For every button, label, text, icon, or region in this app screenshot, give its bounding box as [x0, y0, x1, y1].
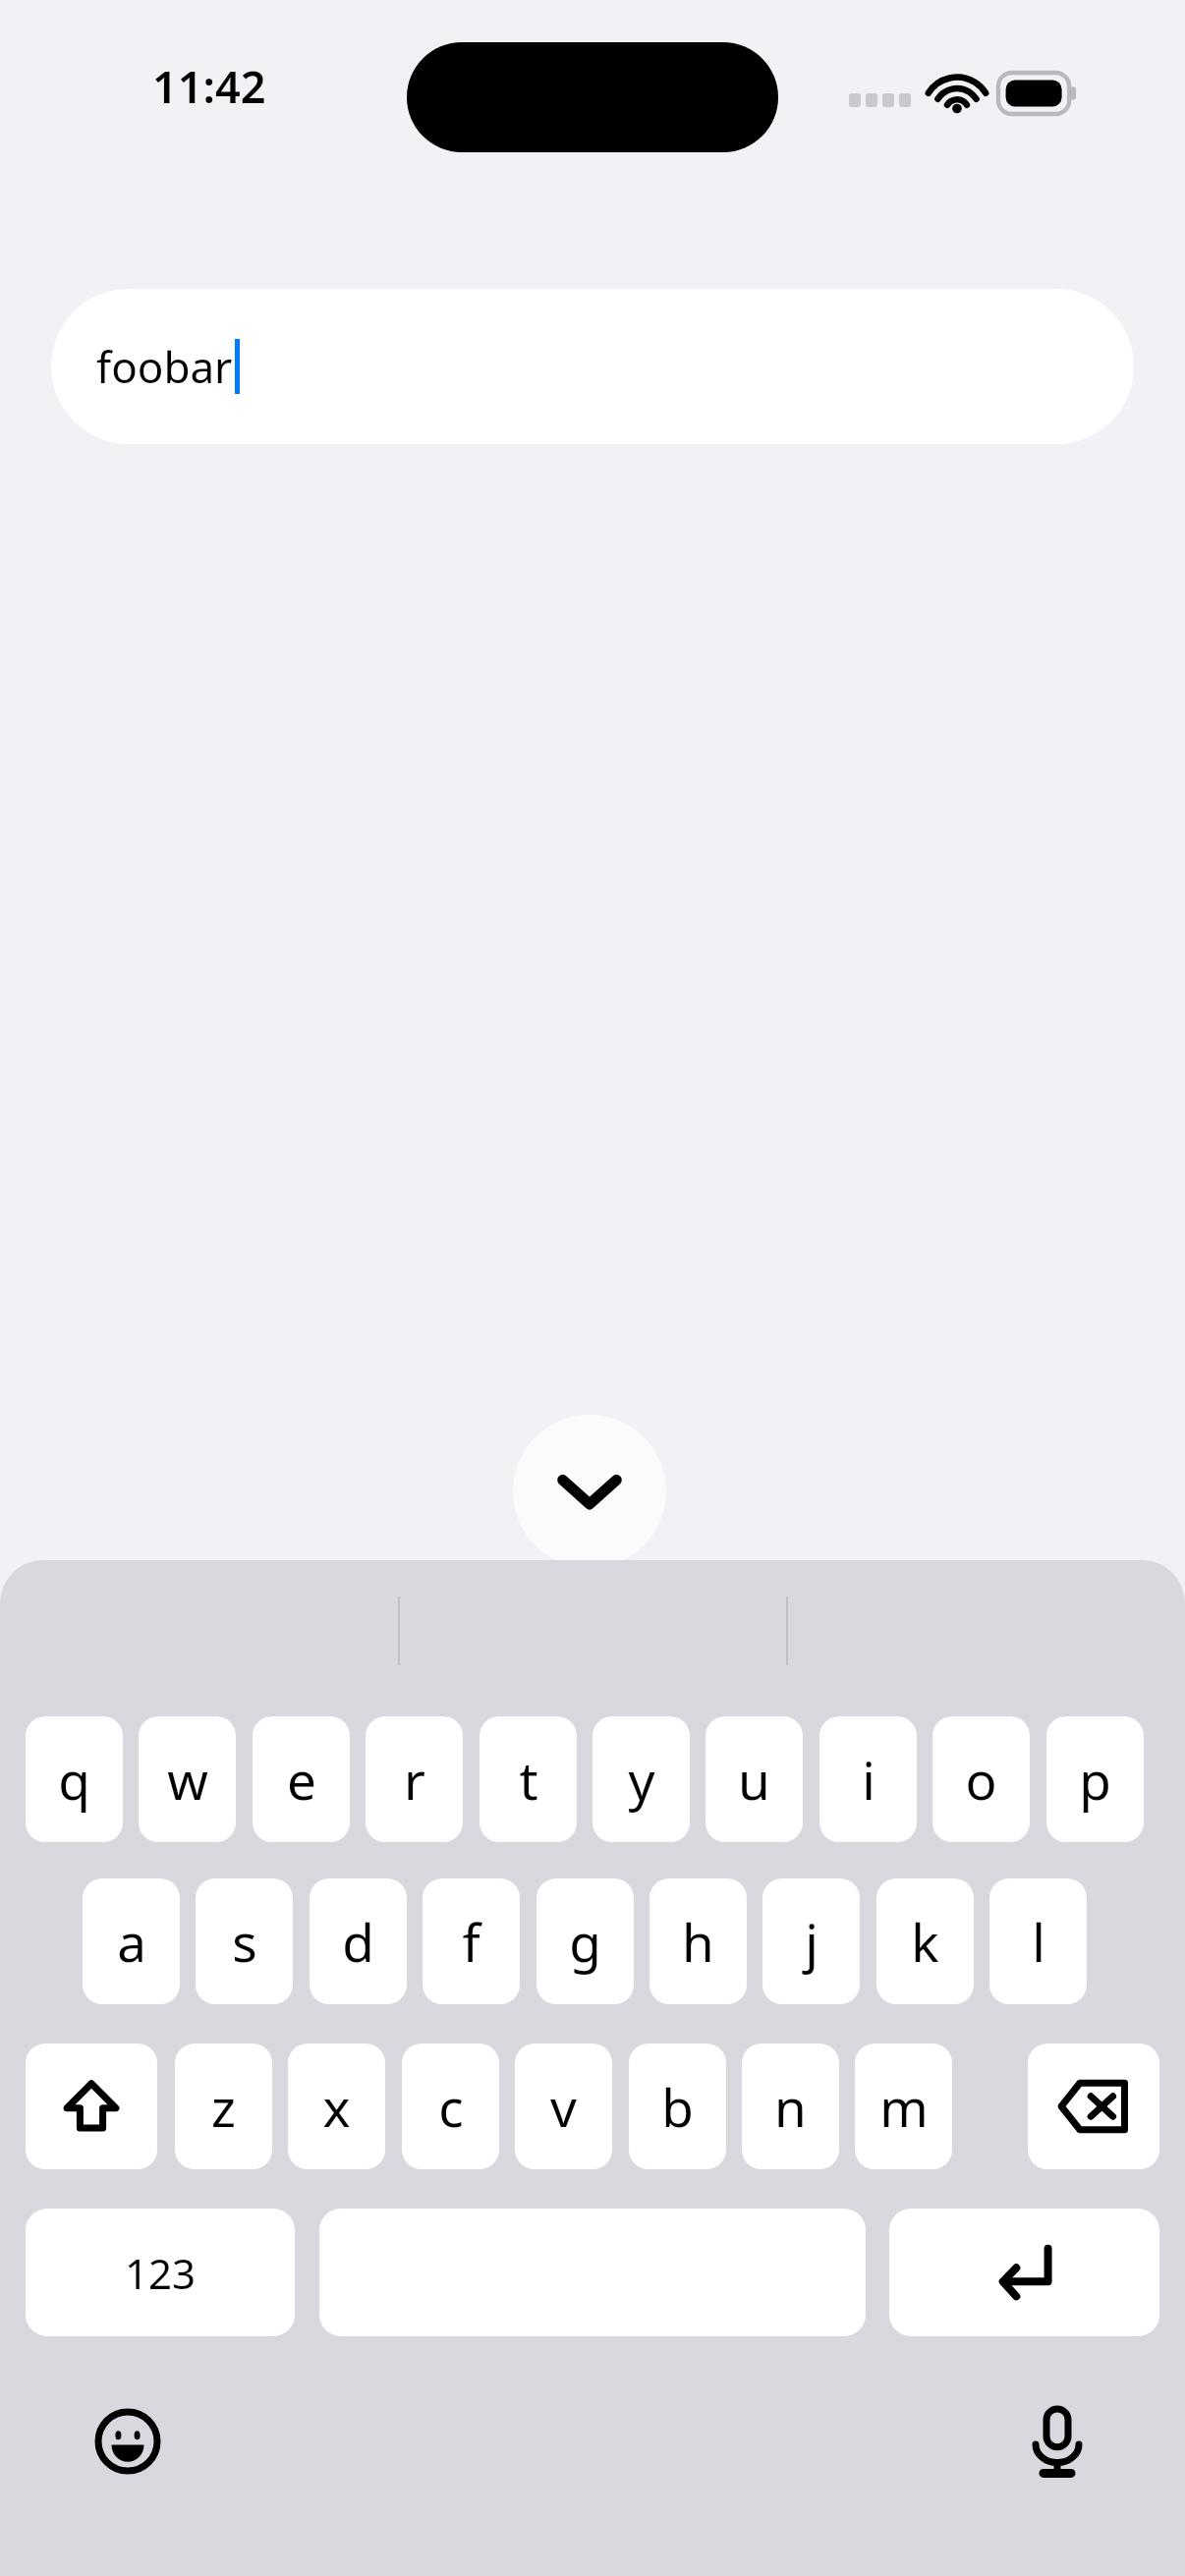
- button[interactable]: d: [310, 1878, 407, 2004]
- staticText: i: [862, 1744, 875, 1815]
- staticText: 123: [125, 2245, 197, 2301]
- staticText: w: [167, 1744, 208, 1815]
- button[interactable]: a: [83, 1878, 180, 2004]
- staticText: d: [342, 1906, 374, 1977]
- button[interactable]: j: [762, 1878, 860, 2004]
- staticText: g: [569, 1906, 601, 1977]
- staticText: l: [1032, 1906, 1045, 1977]
- staticText: t: [519, 1744, 538, 1815]
- button[interactable]: v: [515, 2044, 612, 2169]
- button[interactable]: p: [1046, 1716, 1144, 1842]
- staticText: 11:42: [152, 56, 266, 116]
- button[interactable]: e: [253, 1716, 350, 1842]
- button[interactable]: Return: [889, 2209, 1159, 2336]
- button[interactable]: m: [855, 2044, 952, 2169]
- button[interactable]: Backspace: [1028, 2044, 1159, 2169]
- staticText: p: [1079, 1744, 1111, 1815]
- button[interactable]: 123: [26, 2209, 295, 2336]
- button[interactable]: u: [705, 1716, 803, 1842]
- staticText: h: [682, 1906, 714, 1977]
- button[interactable]: g: [536, 1878, 634, 2004]
- button[interactable]: i: [819, 1716, 917, 1842]
- staticText: j: [805, 1906, 818, 1977]
- staticText: u: [738, 1744, 770, 1815]
- button[interactable]: foobar: [51, 289, 1134, 444]
- staticText: n: [774, 2071, 807, 2142]
- staticText: a: [117, 1906, 146, 1977]
- staticText: m: [879, 2071, 929, 2142]
- staticText: y: [628, 1744, 655, 1815]
- staticText: s: [232, 1906, 257, 1977]
- button[interactable]: c: [402, 2044, 499, 2169]
- staticText: q: [58, 1744, 90, 1815]
- staticText: b: [661, 2071, 694, 2142]
- button[interactable]: f: [423, 1878, 520, 2004]
- button[interactable]: z: [175, 2044, 272, 2169]
- button[interactable]: n: [742, 2044, 839, 2169]
- staticText: c: [438, 2071, 464, 2142]
- button[interactable]: Hide keyboard: [513, 1415, 666, 1568]
- button[interactable]: x: [288, 2044, 385, 2169]
- button[interactable]: Dictation: [1016, 2400, 1099, 2483]
- staticText: v: [550, 2071, 577, 2142]
- staticText: r: [404, 1744, 425, 1815]
- button[interactable]: w: [139, 1716, 236, 1842]
- button[interactable]: Space: [319, 2209, 866, 2336]
- staticText: e: [287, 1744, 316, 1815]
- button[interactable]: l: [989, 1878, 1087, 2004]
- button[interactable]: s: [196, 1878, 293, 2004]
- button[interactable]: r: [366, 1716, 463, 1842]
- button[interactable]: q: [26, 1716, 123, 1842]
- button[interactable]: Emoji: [86, 2400, 169, 2483]
- button[interactable]: b: [629, 2044, 726, 2169]
- button[interactable]: k: [876, 1878, 974, 2004]
- staticText: o: [965, 1744, 997, 1815]
- staticText: foobar: [96, 337, 233, 396]
- staticText: x: [322, 2071, 351, 2142]
- button[interactable]: Shift: [26, 2044, 157, 2169]
- staticText: f: [462, 1906, 480, 1977]
- staticText: z: [211, 2071, 236, 2142]
- button[interactable]: y: [592, 1716, 690, 1842]
- button[interactable]: h: [649, 1878, 747, 2004]
- button[interactable]: t: [480, 1716, 577, 1842]
- staticText: k: [911, 1906, 939, 1977]
- button[interactable]: o: [932, 1716, 1030, 1842]
